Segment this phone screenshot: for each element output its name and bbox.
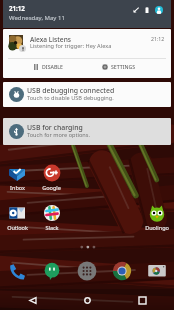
button[interactable]: User account: [155, 6, 163, 14]
staticText: USB debugging connected: [27, 86, 115, 95]
staticText: Touch for more options.: [27, 131, 90, 139]
button[interactable]: Chrome: [104, 260, 139, 282]
staticText: Wednesday, May 11: [9, 14, 65, 22]
button[interactable]: SETTINGS: [83, 59, 154, 74]
staticText: Outlook: [7, 224, 28, 231]
button[interactable]: Camera: [139, 260, 174, 282]
staticText: Touch to disable USB debugging.: [27, 94, 114, 102]
button[interactable]: USB for charging: [3, 118, 171, 145]
button[interactable]: Hangouts: [34, 260, 69, 282]
staticText: USB for charging: [27, 123, 83, 132]
button[interactable]: All apps: [69, 260, 104, 282]
staticText: DISABLE: [42, 63, 63, 70]
staticText: SETTINGS: [111, 63, 136, 70]
staticText: Listening for trigger: Hey Alexa: [30, 42, 112, 50]
staticText: Alexa Listens: [30, 35, 71, 44]
button[interactable]: Inbox: [0, 163, 34, 191]
staticText: Slack: [45, 224, 59, 231]
staticText: Inbox: [10, 184, 25, 191]
button[interactable]: Recents: [132, 290, 152, 310]
staticText: Duolingo: [145, 224, 169, 231]
button[interactable]: USB debugging connected: [3, 82, 171, 107]
button[interactable]: Outlook: [0, 203, 34, 231]
button[interactable]: Slack: [34, 203, 69, 231]
staticText: 21:12: [9, 4, 25, 12]
button[interactable]: Home: [77, 290, 97, 310]
staticText: Google: [42, 184, 61, 191]
button[interactable]: Alexa Listens: [3, 29, 171, 78]
button[interactable]: Google: [34, 163, 69, 191]
staticText: 21:12: [151, 35, 165, 42]
button[interactable]: Duolingo: [139, 203, 174, 231]
button[interactable]: Phone: [0, 260, 34, 282]
button[interactable]: Back: [22, 290, 42, 310]
button[interactable]: DISABLE: [13, 59, 83, 74]
